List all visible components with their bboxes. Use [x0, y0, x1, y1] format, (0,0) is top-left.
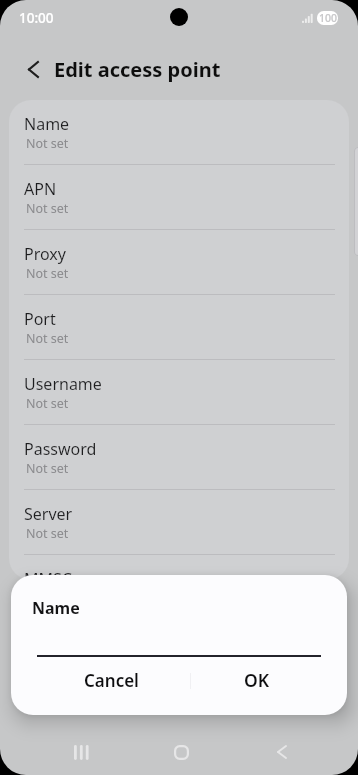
button[interactable]: Recent apps — [45, 729, 117, 775]
button[interactable]: Server — [9, 490, 349, 555]
button[interactable]: Navigate up — [11, 47, 55, 91]
staticText: 100 — [319, 11, 338, 25]
button[interactable]: MMSC — [9, 555, 349, 580]
staticText: Name — [24, 113, 70, 135]
button[interactable]: Back — [246, 729, 318, 775]
staticText: Name — [32, 597, 80, 619]
button[interactable]: OK — [190, 657, 324, 703]
button[interactable]: Username — [9, 360, 349, 425]
staticText: Password — [24, 438, 97, 460]
staticText: Not set — [26, 525, 69, 542]
staticText: 10:00 — [19, 9, 54, 27]
button[interactable]: Name — [9, 100, 349, 165]
staticText: APN — [24, 178, 57, 200]
button[interactable]: Home — [145, 729, 217, 775]
button[interactable]: Password — [9, 425, 349, 490]
staticText: Not set — [26, 265, 69, 282]
staticText: MMSC — [24, 568, 72, 580]
button[interactable]: APN — [9, 165, 349, 230]
button[interactable]: Proxy — [9, 230, 349, 295]
staticText: Not set — [26, 135, 69, 152]
staticText: Username — [24, 373, 102, 395]
staticText: Server — [24, 503, 73, 525]
staticText: Proxy — [24, 243, 66, 265]
button[interactable]: Port — [9, 295, 349, 360]
staticText: Not set — [26, 200, 69, 217]
staticText: Not set — [26, 395, 69, 412]
staticText: Edit access point — [54, 56, 221, 83]
staticText: Not set — [26, 460, 69, 477]
staticText: Port — [24, 308, 56, 330]
staticText: Not set — [26, 330, 69, 347]
staticText: OK — [244, 668, 270, 692]
staticText: Cancel — [84, 669, 139, 692]
button[interactable]: Cancel — [34, 657, 189, 703]
